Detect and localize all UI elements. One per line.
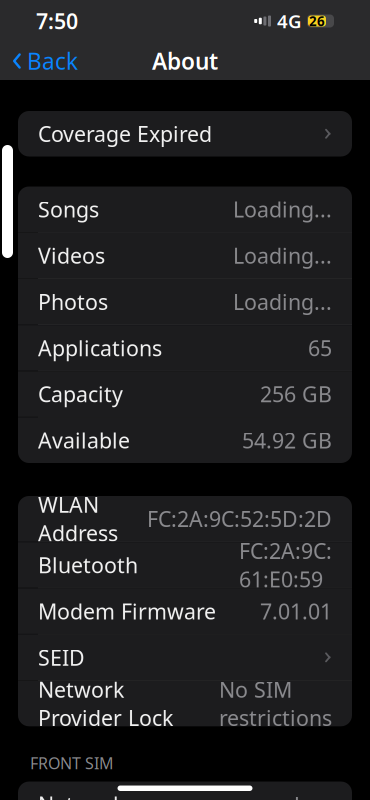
staticText: 26 (309, 12, 325, 30)
button[interactable]: Songs (18, 186, 352, 232)
staticText: 4G (277, 9, 302, 33)
button[interactable]: Applications (18, 325, 352, 371)
staticText: Videos (38, 241, 105, 270)
staticText: Back (27, 46, 78, 76)
staticText: FRONT SIM (30, 752, 114, 773)
staticText: Loading... (233, 287, 332, 316)
button[interactable]: Modem Firmware (18, 588, 352, 634)
button[interactable]: Back (0, 40, 78, 82)
staticText: Bluetooth (38, 551, 138, 579)
staticText: Capacity (38, 380, 123, 408)
button[interactable]: Coverage Expired (18, 111, 352, 156)
staticText: 256 GB (260, 380, 332, 408)
button[interactable]: Available (18, 417, 352, 463)
staticText: Coverage Expired (38, 120, 212, 148)
staticText: 54.92 GB (242, 426, 332, 454)
staticText: FC:2A:9C:61:E0:59 (239, 537, 332, 593)
button[interactable]: Photos (18, 279, 352, 324)
staticText: WLAN Address (38, 490, 118, 547)
staticText: Loading... (233, 195, 332, 223)
staticText: No SIM restrictions (219, 675, 332, 732)
button[interactable]: WLAN Address (18, 496, 352, 541)
staticText: 65 (308, 334, 332, 362)
button[interactable]: Network Provider Lock (18, 681, 352, 726)
staticText: Jazz (294, 790, 332, 800)
staticText: FC:2A:9C:52:5D:2D (147, 505, 332, 533)
staticText: 7.01.01 (260, 597, 332, 625)
staticText: Applications (38, 334, 162, 362)
button[interactable]: Videos (18, 233, 352, 278)
staticText: 7:50 (36, 7, 78, 35)
button[interactable]: Network (18, 781, 352, 800)
staticText: Modem Firmware (38, 597, 216, 625)
staticText: Available (38, 426, 130, 454)
button[interactable]: SEID (18, 635, 352, 680)
staticText: About (152, 46, 218, 76)
staticText: Songs (38, 195, 99, 223)
staticText: Loading... (233, 241, 332, 270)
staticText: SEID (38, 643, 85, 671)
staticText: Photos (38, 287, 108, 316)
staticText: Network (38, 790, 124, 800)
button[interactable]: Capacity (18, 371, 352, 417)
staticText: Network Provider Lock (38, 675, 173, 732)
button[interactable]: Bluetooth (18, 542, 352, 588)
